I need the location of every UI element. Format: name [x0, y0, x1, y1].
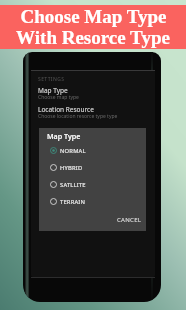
button[interactable]: CANCEL: [115, 213, 144, 227]
button[interactable]: Map Type: [31, 86, 155, 102]
staticText: Choose map type: [38, 94, 79, 101]
staticText: SATLLITE: [60, 181, 86, 189]
staticText: Choose Map Type: [20, 6, 167, 27]
button[interactable]: HYBRID: [47, 159, 139, 176]
button[interactable]: TERRAIN: [47, 193, 139, 210]
staticText: TERRAIN: [60, 198, 86, 206]
staticText: SETTINGS: [38, 76, 65, 83]
button[interactable]: NORMAL: [47, 142, 139, 159]
staticText: Map Type: [38, 86, 68, 95]
button[interactable]: Location Resource: [31, 105, 155, 121]
staticText: With Resorce Type: [16, 27, 170, 48]
staticText: Location Resource: [38, 105, 94, 114]
staticText: HYBRID: [60, 164, 83, 172]
button[interactable]: SATLLITE: [47, 176, 139, 193]
staticText: NORMAL: [60, 147, 86, 155]
staticText: Choose location resorce type type: [38, 113, 118, 120]
staticText: Map Type: [47, 131, 81, 141]
